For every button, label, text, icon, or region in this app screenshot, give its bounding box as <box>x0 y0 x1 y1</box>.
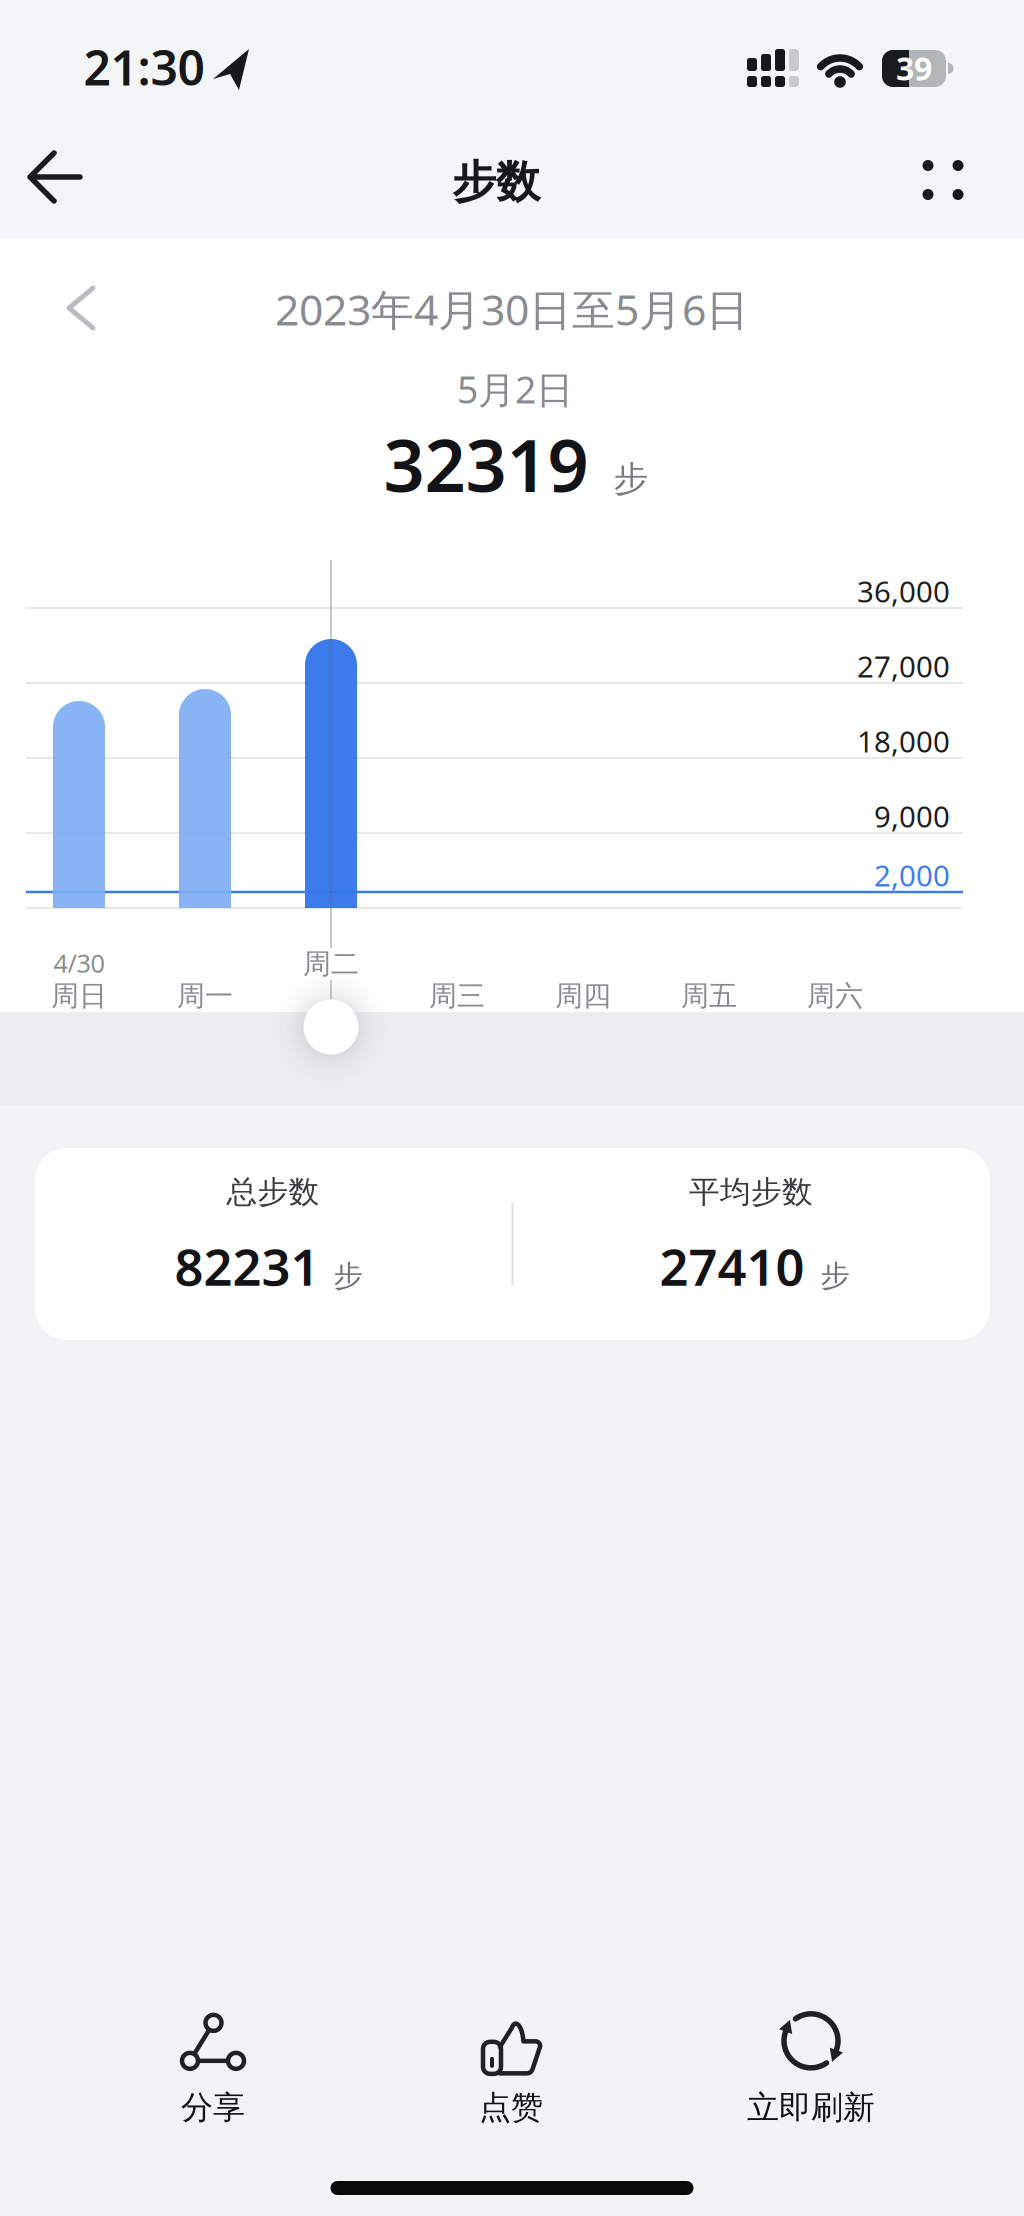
staticText: 周五 <box>681 979 737 1013</box>
staticText: 9,000 <box>874 796 950 835</box>
button[interactable]: 立即刷新 <box>706 2003 916 2129</box>
staticText: 2023年4月30日至5月6日 <box>275 281 749 337</box>
staticText: 周日 <box>51 979 107 1013</box>
button[interactable]: 上一周 <box>69 288 103 332</box>
button[interactable]: 返回 <box>22 153 88 201</box>
staticText: 总步数 <box>226 1173 319 1211</box>
button[interactable]: 更多 <box>921 158 965 201</box>
staticText: 点赞 <box>479 2088 543 2127</box>
staticText: 39 <box>896 47 932 89</box>
staticText: 立即刷新 <box>747 2088 875 2127</box>
staticText: 步 <box>333 1258 362 1294</box>
staticText: 周二 <box>303 947 359 981</box>
staticText: 2,000 <box>874 855 950 894</box>
staticText: 周三 <box>429 979 485 1013</box>
staticText: 步数 <box>452 155 540 209</box>
staticText: 82231 <box>174 1232 319 1300</box>
staticText: 周一 <box>177 979 233 1013</box>
staticText: 27410 <box>659 1232 804 1300</box>
staticText: 32319 <box>383 416 588 512</box>
staticText: 18,000 <box>857 721 950 760</box>
button[interactable]: 分享 <box>128 2003 298 2129</box>
staticText: 4/30 <box>53 946 104 980</box>
staticText: 步 <box>820 1258 849 1294</box>
button[interactable]: 选择日期 <box>303 999 358 1054</box>
staticText: 平均步数 <box>689 1173 813 1211</box>
staticText: 周四 <box>555 979 611 1013</box>
staticText: 步 <box>613 458 648 500</box>
staticText: 周六 <box>807 979 863 1013</box>
staticText: 分享 <box>181 2088 245 2127</box>
staticText: 21:30 <box>83 35 204 99</box>
staticText: 36,000 <box>857 571 950 610</box>
staticText: 5月2日 <box>457 364 573 414</box>
staticText: 27,000 <box>857 646 950 685</box>
button[interactable]: 点赞 <box>426 2003 596 2129</box>
